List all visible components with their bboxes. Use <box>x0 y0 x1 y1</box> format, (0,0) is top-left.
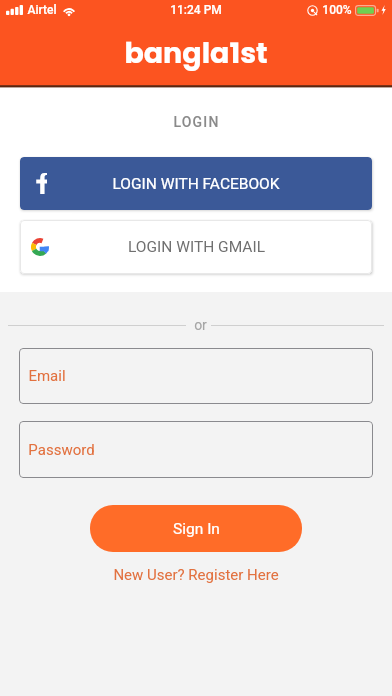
staticText: 100% <box>322 3 352 17</box>
other: Facebook <box>36 173 47 194</box>
staticText: or <box>194 317 207 333</box>
staticText: Email <box>28 367 66 385</box>
button[interactable]: Sign In <box>90 505 302 552</box>
staticText: LOGIN <box>173 114 220 130</box>
other: Google <box>31 238 49 256</box>
staticText: LOGIN WITH GMAIL <box>128 238 265 256</box>
staticText: LOGIN WITH FACEBOOK <box>112 175 280 193</box>
staticText: 11:24 PM <box>170 3 222 17</box>
staticText: Password <box>28 441 95 459</box>
button[interactable]: Email <box>19 348 373 404</box>
button[interactable]: New User? Register Here <box>103 563 289 587</box>
button[interactable]: LOGIN WITH FACEBOOK <box>20 157 372 210</box>
staticText: bangla1st <box>124 33 268 73</box>
staticText: Sign In <box>173 520 220 538</box>
staticText: Airtel <box>27 3 57 17</box>
staticText: New User? Register Here <box>113 566 279 584</box>
button[interactable]: Password <box>19 421 373 478</box>
button[interactable]: LOGIN WITH GMAIL <box>20 220 372 274</box>
